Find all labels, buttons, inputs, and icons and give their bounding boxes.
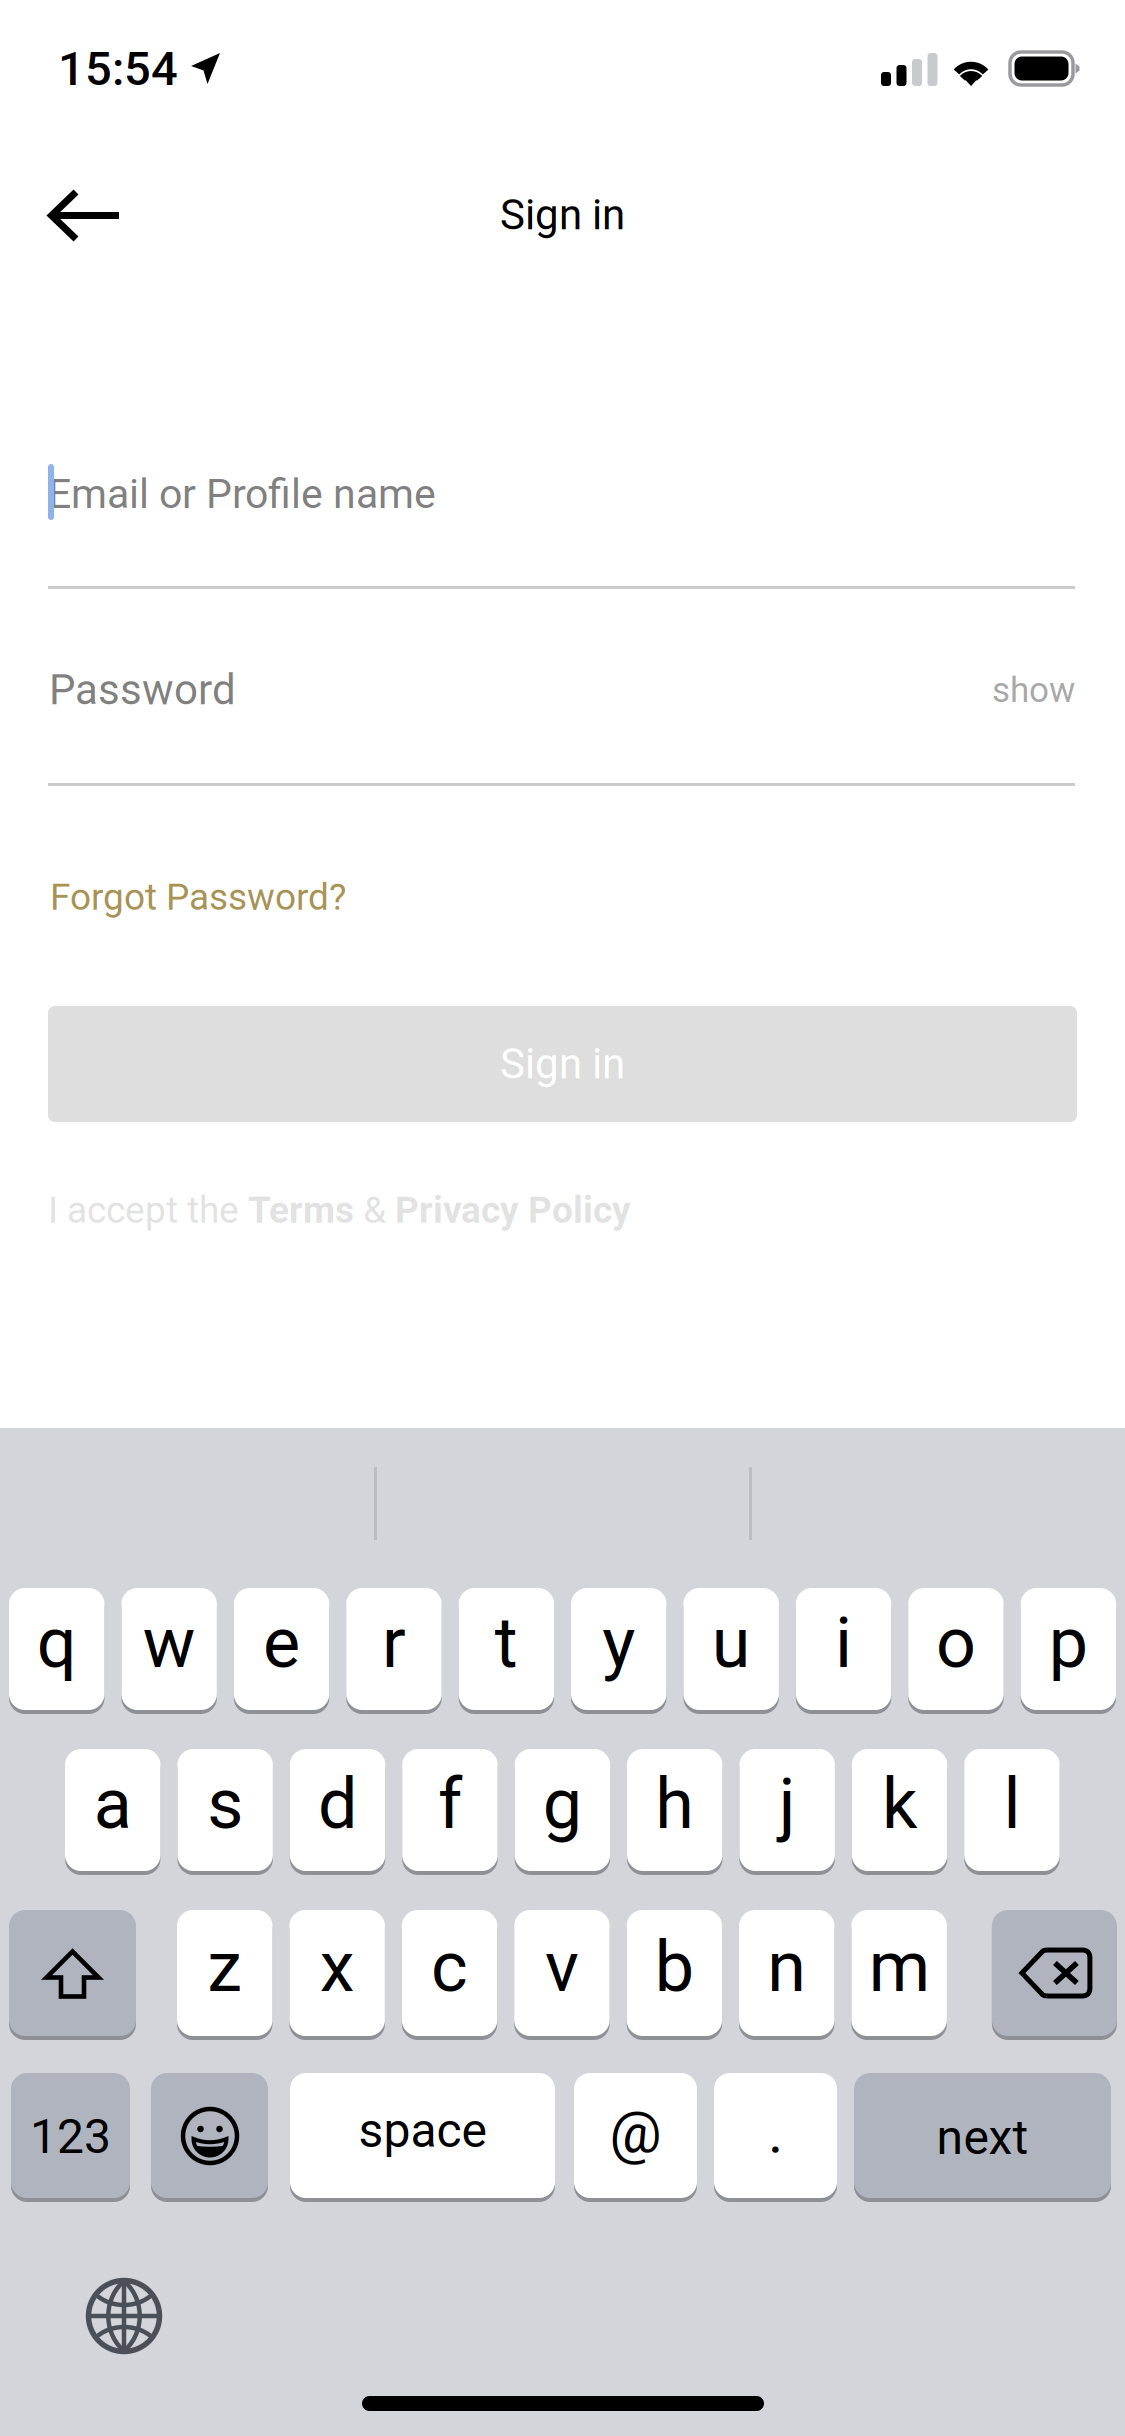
staticText: Sign in (500, 190, 625, 240)
staticText: Terms (248, 1188, 354, 1232)
staticText: g (543, 1763, 582, 1845)
button[interactable]: s (177, 1749, 273, 1875)
button[interactable]: t (459, 1588, 554, 1714)
button[interactable]: f (402, 1749, 498, 1875)
staticText: show (992, 669, 1075, 710)
button[interactable]: @ (574, 2073, 697, 2202)
staticText: b (655, 1926, 694, 2008)
button[interactable]: 123 (11, 2073, 130, 2202)
button[interactable]: g (515, 1749, 610, 1875)
staticText: f (438, 1763, 462, 1845)
staticText: Sign in (500, 1039, 625, 1089)
staticText: @ (609, 2098, 661, 2166)
button[interactable]: x (289, 1910, 385, 2040)
button[interactable]: a (65, 1749, 160, 1875)
staticText: Password (49, 665, 236, 715)
staticText: d (318, 1763, 357, 1845)
button[interactable]: y (571, 1588, 666, 1714)
button[interactable]: show (895, 648, 1075, 732)
staticText: next (936, 2109, 1028, 2166)
button[interactable]: Next keyboard (59, 2251, 189, 2381)
button[interactable]: u (683, 1588, 779, 1714)
staticText: s (207, 1763, 243, 1845)
button[interactable]: o (908, 1588, 1004, 1714)
staticText: 15:54 (58, 41, 178, 97)
staticText: Email or Profile name (48, 470, 436, 518)
button[interactable]: l (964, 1749, 1060, 1875)
staticText: v (545, 1926, 579, 2008)
button[interactable]: e (234, 1588, 329, 1714)
button[interactable]: n (739, 1910, 834, 2040)
staticText: . (768, 2098, 783, 2166)
staticText: e (263, 1602, 300, 1684)
staticText: q (37, 1602, 77, 1684)
button[interactable]: r (346, 1588, 442, 1714)
staticText: o (936, 1602, 976, 1684)
staticText: p (1049, 1602, 1088, 1684)
button[interactable]: Emoji (151, 2073, 268, 2202)
button[interactable]: k (852, 1749, 947, 1875)
staticText: c (431, 1926, 468, 2008)
staticText: Forgot Password? (50, 875, 346, 919)
button[interactable]: i (796, 1588, 891, 1714)
staticText: h (655, 1763, 694, 1845)
staticText: y (602, 1602, 635, 1684)
button[interactable]: w (121, 1588, 217, 1714)
button[interactable]: space (290, 2073, 555, 2202)
button[interactable]: m (851, 1910, 947, 2040)
button[interactable]: next (854, 2073, 1111, 2202)
button[interactable]: h (627, 1749, 722, 1875)
button[interactable]: d (290, 1749, 385, 1875)
staticText: z (207, 1926, 242, 2008)
staticText: 123 (30, 2108, 111, 2165)
button[interactable]: . (714, 2073, 837, 2202)
staticText: Privacy Policy (395, 1188, 631, 1232)
staticText: a (94, 1763, 132, 1845)
button[interactable]: z (177, 1910, 272, 2040)
staticText: n (767, 1926, 806, 2008)
staticText: m (869, 1926, 930, 2008)
staticText: i (835, 1602, 852, 1684)
staticText: r (382, 1602, 406, 1684)
button[interactable]: Forgot Password? (50, 866, 380, 928)
button[interactable]: Back (0, 132, 140, 252)
button[interactable]: p (1021, 1588, 1116, 1714)
staticText: l (1003, 1763, 1020, 1845)
staticText: k (882, 1763, 917, 1845)
staticText: I accept the (48, 1188, 248, 1232)
button[interactable]: Shift (9, 1910, 136, 2040)
staticText: w (143, 1602, 196, 1684)
button[interactable]: j (739, 1749, 835, 1875)
button[interactable]: c (402, 1910, 497, 2040)
button[interactable]: Delete (992, 1910, 1117, 2040)
button[interactable]: b (627, 1910, 722, 2040)
staticText: & (354, 1188, 395, 1232)
staticText: u (712, 1602, 751, 1684)
staticText: j (779, 1763, 796, 1845)
staticText: space (358, 2102, 486, 2159)
button[interactable]: Sign in (48, 1006, 1077, 1122)
staticText: x (320, 1926, 355, 2008)
button[interactable]: q (9, 1588, 104, 1714)
button[interactable]: v (514, 1910, 610, 2040)
staticText: t (495, 1602, 518, 1684)
